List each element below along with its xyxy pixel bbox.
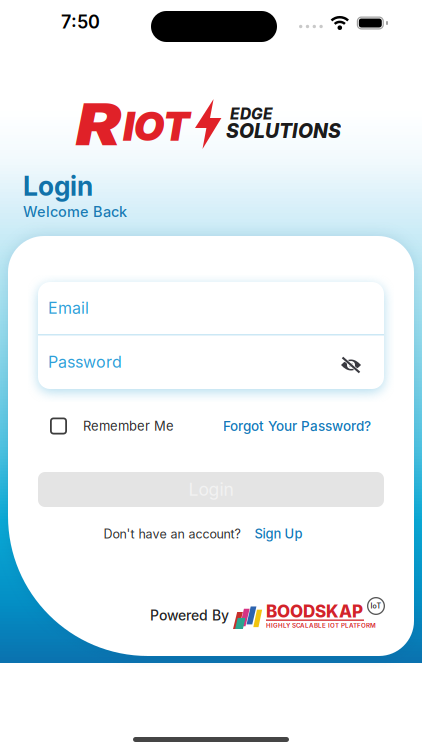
staticText: Forgot Your Password? [223, 418, 371, 434]
staticText: 7:50 [61, 11, 100, 33]
button[interactable]: Forgot Your Password? [223, 418, 371, 434]
button[interactable]: Remember Me [50, 417, 174, 434]
staticText: Email [48, 298, 89, 318]
staticText: BOODSKAP [266, 601, 363, 622]
staticText: Welcome Back [23, 203, 127, 220]
staticText: R [79, 89, 118, 159]
button[interactable]: Sign Up [254, 526, 302, 542]
staticText: Login [23, 170, 93, 202]
staticText: HIGHLY SCALABLE IOT PLATFORM [266, 622, 376, 629]
staticText: SOLUTIONS [226, 119, 341, 143]
staticText: Login [188, 479, 233, 500]
staticText: IoT [370, 602, 381, 610]
button[interactable]: Show password [341, 346, 384, 377]
staticText: IOT [123, 102, 189, 150]
staticText: Don't have an account? [103, 526, 240, 541]
staticText: Remember Me [83, 418, 174, 434]
staticText: Password [48, 352, 122, 372]
staticText: EDGE [230, 104, 273, 123]
button[interactable]: Password [38, 335, 328, 389]
staticText: Sign Up [254, 526, 302, 542]
staticText: Powered By [150, 607, 229, 624]
button[interactable]: Email [38, 282, 384, 334]
